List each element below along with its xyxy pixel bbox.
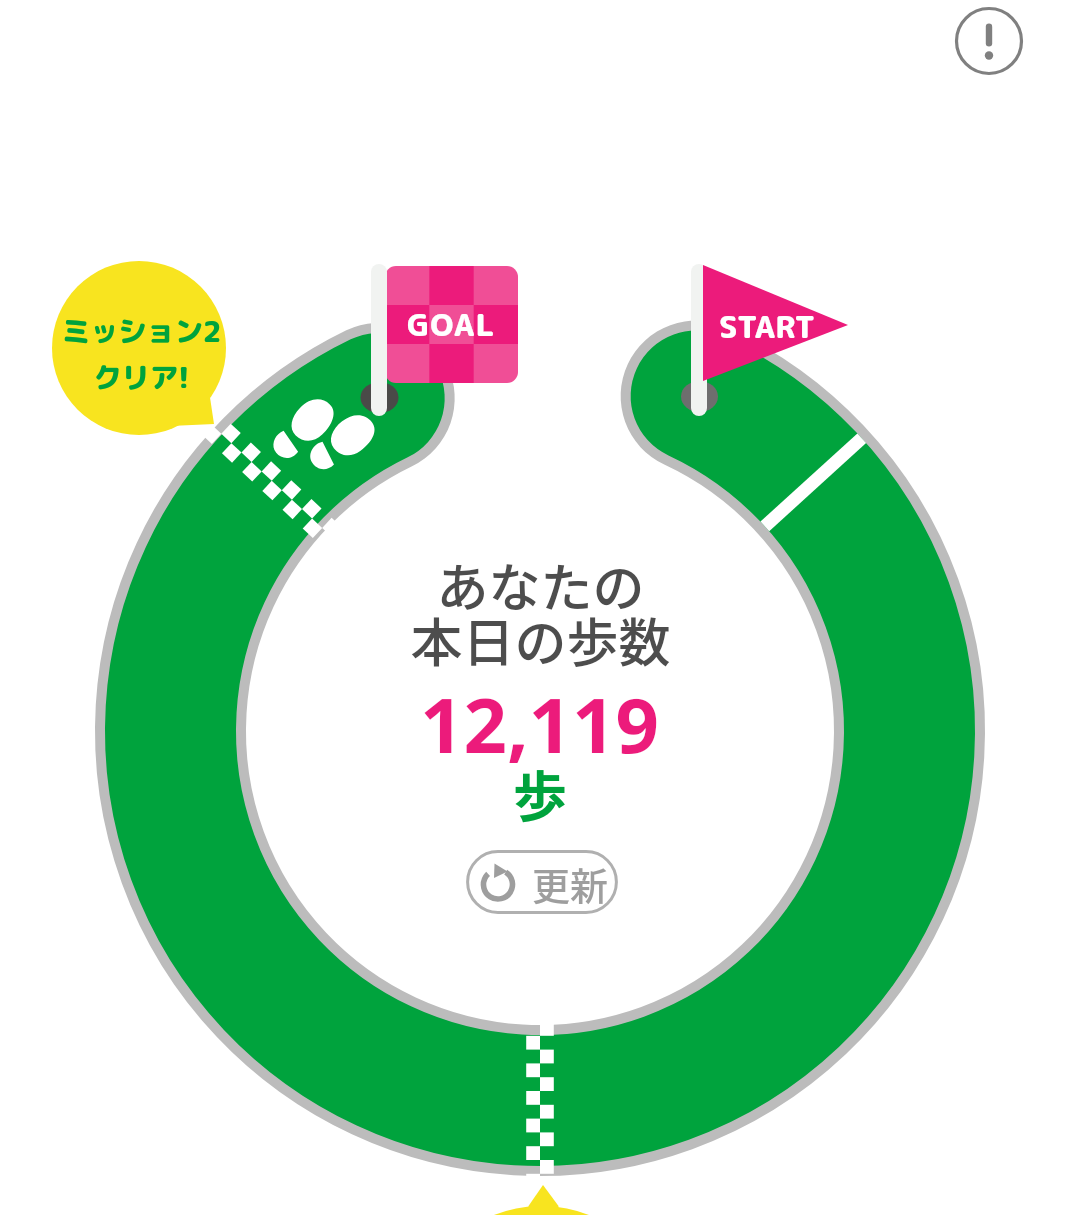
staticText: ミッション2 クリア!	[61, 311, 221, 397]
staticText: あなたの 本日の歩数	[410, 547, 671, 667]
staticText: 12,119	[420, 672, 660, 772]
staticText: GOAL	[407, 303, 496, 346]
button[interactable]: Information	[951, 3, 1027, 79]
button[interactable]: 更新	[466, 850, 618, 914]
staticText: START	[719, 305, 816, 348]
staticText: 歩	[513, 754, 567, 824]
staticText: 更新	[532, 856, 609, 911]
